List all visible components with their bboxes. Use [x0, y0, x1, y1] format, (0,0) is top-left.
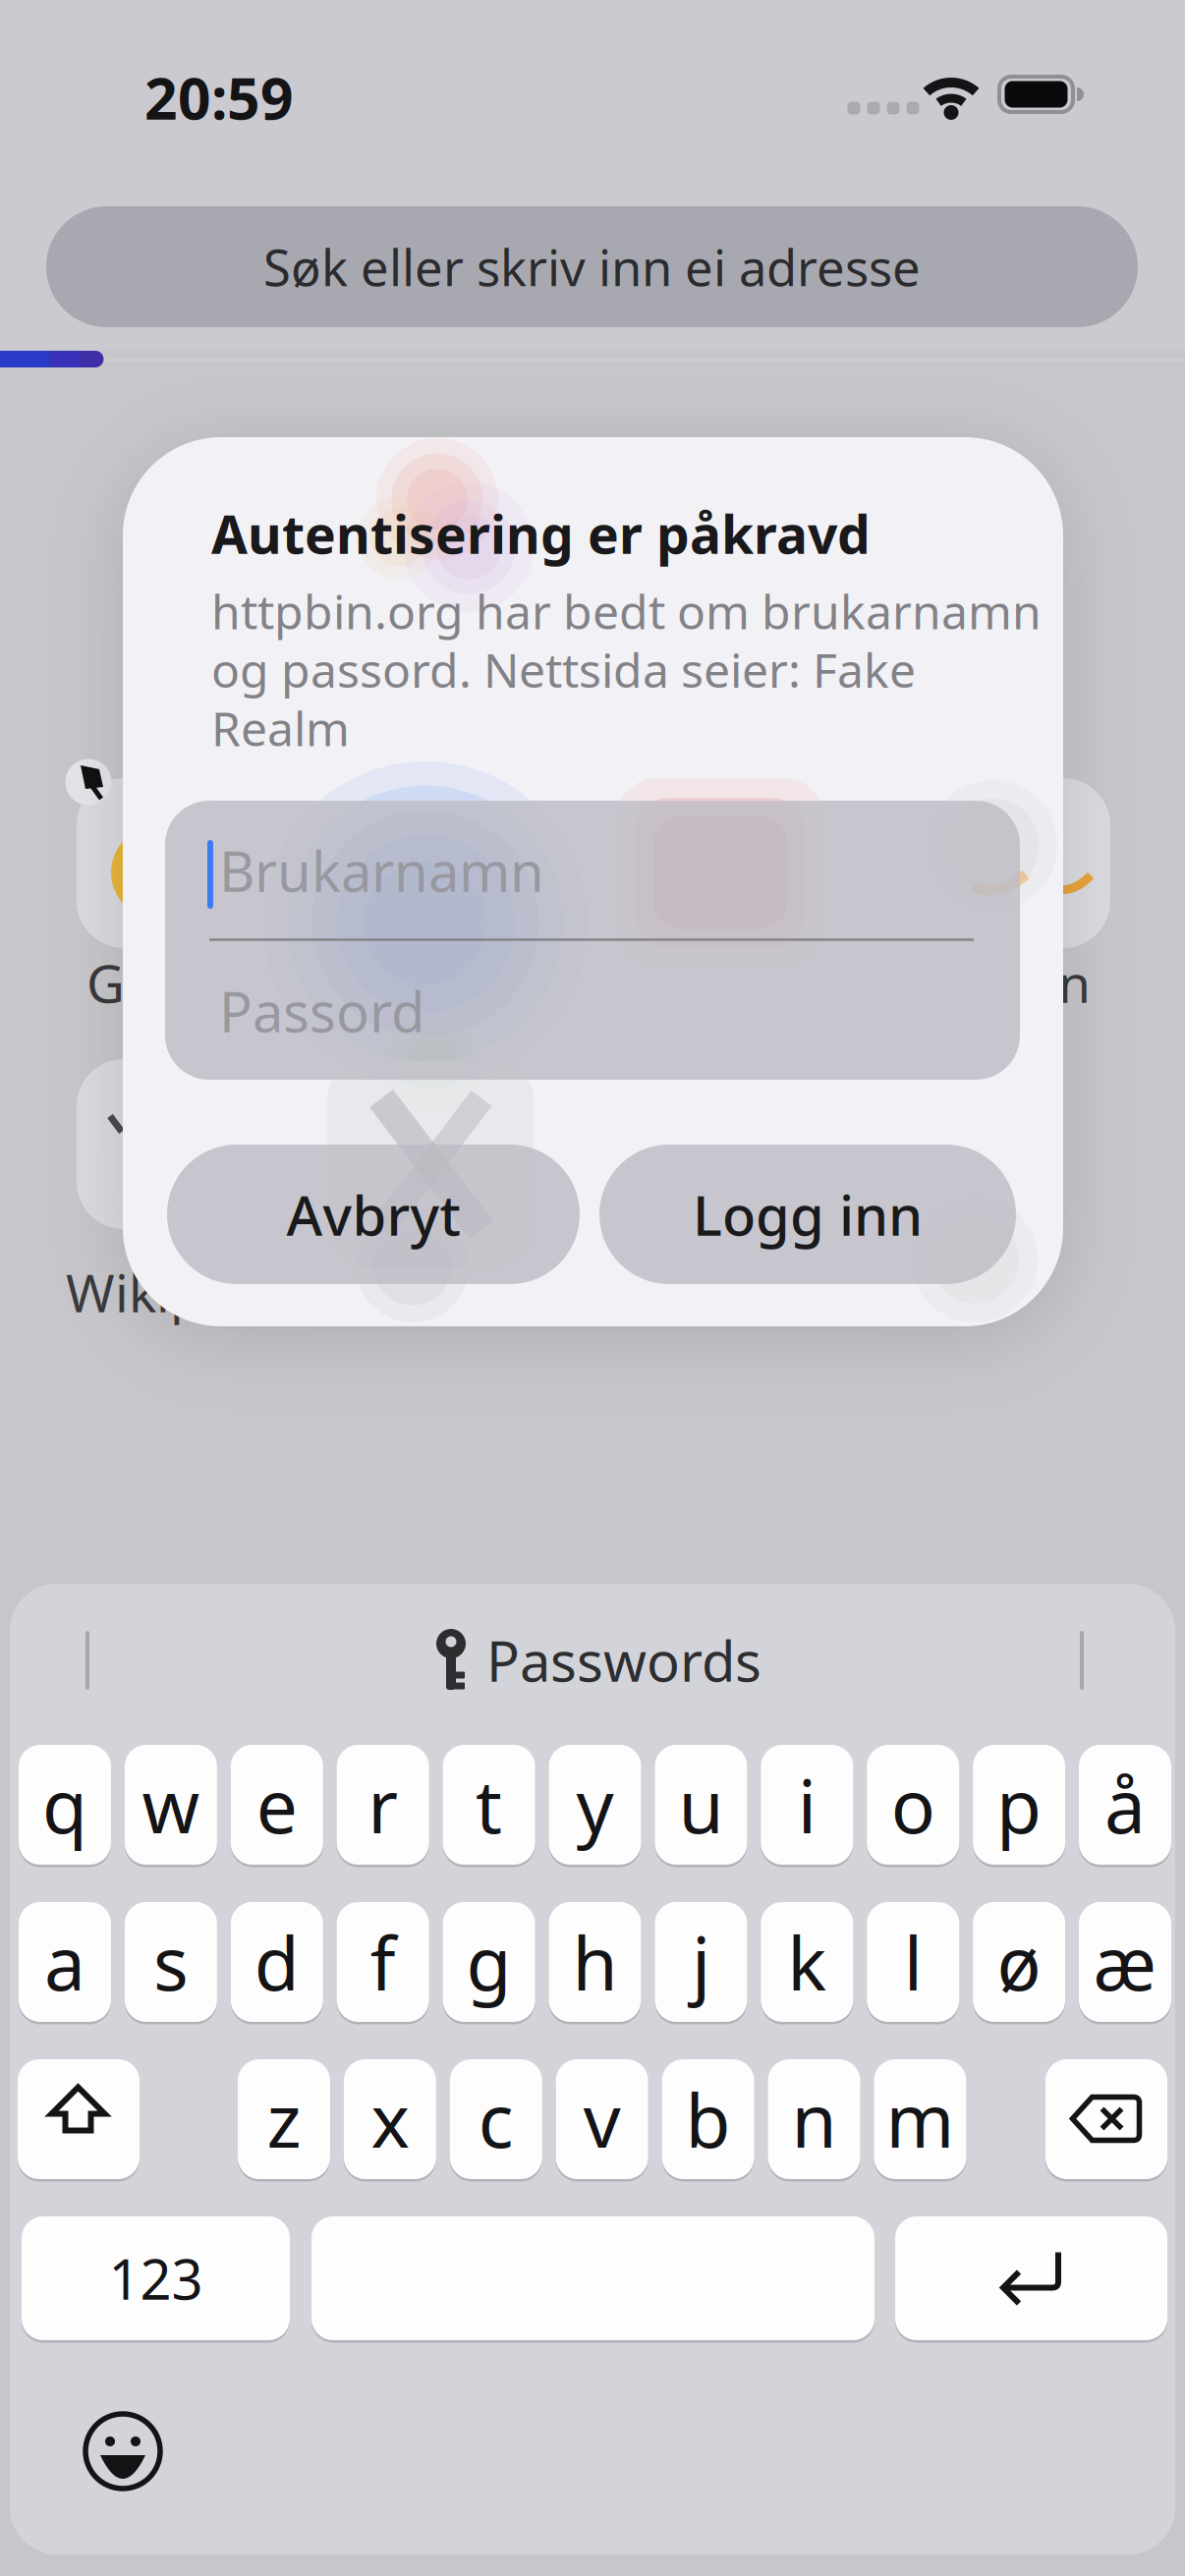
staticText: a: [44, 1913, 85, 2011]
button[interactable]: m: [874, 2059, 966, 2183]
staticText: n: [791, 2070, 837, 2168]
staticText: s: [153, 1913, 189, 2011]
staticText: x: [371, 2070, 409, 2168]
staticText: e: [256, 1756, 298, 1854]
button[interactable]: o: [867, 1745, 959, 1869]
button[interactable]: v: [556, 2059, 648, 2183]
staticText: r: [368, 1756, 398, 1854]
staticText: q: [42, 1756, 87, 1854]
staticText: og passord. Nettsida seier: Fake: [211, 638, 916, 701]
button[interactable]: Brukarnamn og passord: [165, 801, 1020, 1080]
staticText: æ: [1093, 1913, 1157, 2011]
button[interactable]: b: [662, 2059, 754, 2183]
staticText: o: [891, 1756, 935, 1854]
staticText: h: [572, 1913, 618, 2011]
button[interactable]: w: [125, 1745, 217, 1869]
staticText: f: [370, 1913, 396, 2011]
button[interactable]: n: [768, 2059, 860, 2183]
button[interactable]: æ: [1079, 1902, 1171, 2026]
button[interactable]: Space: [311, 2216, 875, 2344]
staticText: c: [478, 2070, 514, 2168]
staticText: l: [904, 1913, 922, 2011]
button[interactable]: 123: [22, 2216, 290, 2344]
staticText: g: [466, 1913, 512, 2011]
staticText: z: [267, 2070, 301, 2168]
button[interactable]: i: [761, 1745, 853, 1869]
staticText: ø: [997, 1913, 1041, 2011]
staticText: w: [142, 1756, 200, 1854]
button[interactable]: z: [238, 2059, 330, 2183]
button[interactable]: Avbryt: [167, 1145, 580, 1284]
button[interactable]: d: [231, 1902, 323, 2026]
button[interactable]: e: [231, 1745, 323, 1869]
button[interactable]: Logg inn: [599, 1145, 1016, 1284]
button[interactable]: l: [867, 1902, 959, 2026]
staticText: v: [583, 2070, 621, 2168]
button[interactable]: r: [337, 1745, 429, 1869]
staticText: Google: [86, 948, 263, 1017]
staticText: p: [996, 1756, 1042, 1854]
button[interactable]: c: [450, 2059, 542, 2183]
staticText: å: [1104, 1756, 1146, 1854]
button[interactable]: g: [443, 1902, 535, 2026]
staticText: Amazon: [890, 948, 1091, 1017]
button[interactable]: ø: [973, 1902, 1065, 2026]
button[interactable]: Søk eller skriv inn ei adresse: [46, 206, 1138, 327]
staticText: Realm: [211, 697, 350, 759]
button[interactable]: Return: [895, 2216, 1167, 2344]
staticText: Søk eller skriv inn ei adresse: [263, 234, 921, 300]
staticText: k: [787, 1913, 827, 2011]
button[interactable]: k: [761, 1902, 853, 2026]
button[interactable]: q: [19, 1745, 111, 1869]
staticText: m: [886, 2070, 954, 2168]
button[interactable]: Shift: [18, 2059, 140, 2183]
button[interactable]: p: [973, 1745, 1065, 1869]
button[interactable]: s: [125, 1902, 217, 2026]
button[interactable]: Passwords: [435, 1624, 762, 1697]
button[interactable]: y: [549, 1745, 641, 1869]
staticText: Wikipedia: [66, 1257, 308, 1327]
staticText: Avbryt: [286, 1178, 460, 1251]
button[interactable]: x: [344, 2059, 436, 2183]
staticText: j: [692, 1913, 710, 2011]
button[interactable]: a: [19, 1902, 111, 2026]
button[interactable]: h: [549, 1902, 641, 2026]
staticText: b: [685, 2070, 731, 2168]
staticText: y: [576, 1756, 614, 1854]
staticText: Passord: [219, 974, 424, 1047]
button[interactable]: Emoji: [84, 2412, 162, 2491]
staticText: Logg inn: [693, 1178, 923, 1251]
staticText: d: [254, 1913, 299, 2011]
staticText: httpbin.org har bedt om brukarnamn: [211, 580, 1042, 642]
button[interactable]: f: [337, 1902, 429, 2026]
button[interactable]: j: [655, 1902, 747, 2026]
staticText: i: [798, 1756, 816, 1854]
button[interactable]: t: [443, 1745, 535, 1869]
staticText: Autentisering er påkravd: [211, 499, 871, 568]
button[interactable]: å: [1079, 1745, 1171, 1869]
staticText: u: [678, 1756, 724, 1854]
button[interactable]: u: [655, 1745, 747, 1869]
staticText: Passwords: [486, 1624, 762, 1697]
button[interactable]: Delete: [1045, 2059, 1167, 2183]
staticText: 20:59: [144, 59, 294, 135]
staticText: 123: [109, 2242, 203, 2315]
staticText: Brukarnamn: [219, 834, 544, 907]
staticText: t: [476, 1756, 502, 1854]
